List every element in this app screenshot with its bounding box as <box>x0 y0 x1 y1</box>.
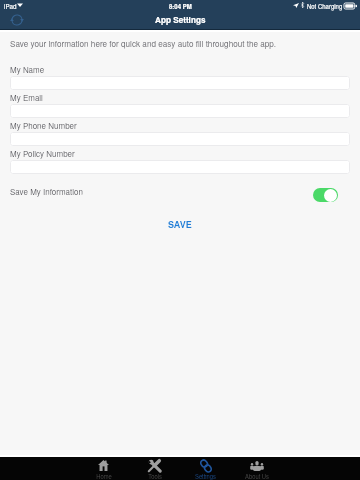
button[interactable] <box>10 104 350 118</box>
button[interactable]: Refresh <box>8 11 25 28</box>
staticText: My Phone Number <box>10 120 77 131</box>
staticText: Not Charging <box>307 2 343 11</box>
staticText: About Us <box>245 472 269 480</box>
button[interactable] <box>10 76 350 90</box>
button[interactable]: About Us <box>231 457 282 480</box>
button[interactable]: SAVE <box>158 214 202 235</box>
button[interactable]: Settings <box>180 457 231 480</box>
staticText: iPad <box>4 2 17 11</box>
button[interactable]: Save My Information toggle <box>313 188 338 202</box>
staticText: Tools <box>148 472 162 480</box>
staticText: My Name <box>10 64 45 75</box>
staticText: App Settings <box>155 14 206 26</box>
staticText: Home <box>96 472 112 480</box>
button[interactable] <box>10 132 350 146</box>
staticText: Settings <box>195 472 216 480</box>
staticText: My Email <box>10 92 43 103</box>
staticText: 8:04 PM <box>169 2 192 11</box>
button[interactable]: Tools <box>129 457 180 480</box>
button[interactable] <box>10 160 350 174</box>
staticText: Save your information here for quick and… <box>10 38 277 50</box>
staticText: My Policy Number <box>10 148 75 159</box>
staticText: SAVE <box>168 218 192 231</box>
button[interactable]: Home <box>78 457 129 480</box>
staticText: Save My Information <box>10 186 83 197</box>
